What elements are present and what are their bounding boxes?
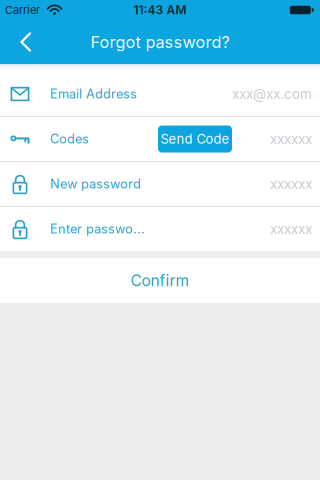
staticText: Codes: [50, 131, 89, 147]
staticText: Send Code: [160, 131, 229, 147]
staticText: Enter passwo...: [50, 221, 145, 237]
staticText: xxxxxx: [270, 176, 312, 192]
button[interactable]: Confirm: [0, 258, 320, 303]
staticText: xxxxxx: [270, 221, 312, 237]
staticText: New password: [50, 176, 141, 192]
staticText: xxx@xx.com: [232, 86, 312, 102]
staticText: Confirm: [130, 271, 189, 290]
staticText: 11:43 AM: [133, 3, 186, 17]
staticText: Forgot password?: [90, 32, 229, 52]
staticText: xxxxxx: [270, 131, 312, 147]
button[interactable]: Send Code: [158, 125, 232, 152]
staticText: Email Address: [50, 86, 137, 102]
staticText: Carrier: [5, 3, 40, 17]
button[interactable]: Back: [0, 20, 47, 64]
